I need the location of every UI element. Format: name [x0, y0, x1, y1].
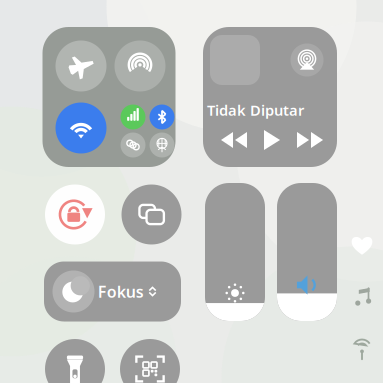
button[interactable]: Cellular Data — [120, 104, 145, 129]
button[interactable]: Bluetooth — [149, 104, 174, 129]
button[interactable]: Volume — [277, 183, 337, 321]
button[interactable]: Flashlight — [45, 339, 105, 383]
staticText: Fokus — [98, 281, 144, 302]
button[interactable]: Previous — [217, 127, 251, 153]
button[interactable]: AirPlay — [290, 43, 323, 76]
staticText: Tidak Diputar — [207, 100, 304, 120]
button[interactable]: Personal Hotspot — [120, 132, 145, 157]
button[interactable]: Next — [293, 127, 327, 153]
button[interactable]: Wi‑Fi — [55, 102, 106, 153]
button[interactable]: Airplane Mode — [55, 40, 106, 91]
button[interactable]: AirDrop — [114, 40, 165, 91]
button[interactable]: VPN — [149, 132, 174, 157]
button[interactable]: Brightness — [205, 183, 265, 321]
button[interactable]: Code Scanner — [120, 339, 180, 383]
button[interactable]: Fokus — [44, 261, 181, 321]
button[interactable]: Play — [256, 127, 288, 153]
button[interactable]: Rotation Lock — [45, 184, 105, 244]
button[interactable]: Screen Mirroring — [121, 184, 181, 244]
